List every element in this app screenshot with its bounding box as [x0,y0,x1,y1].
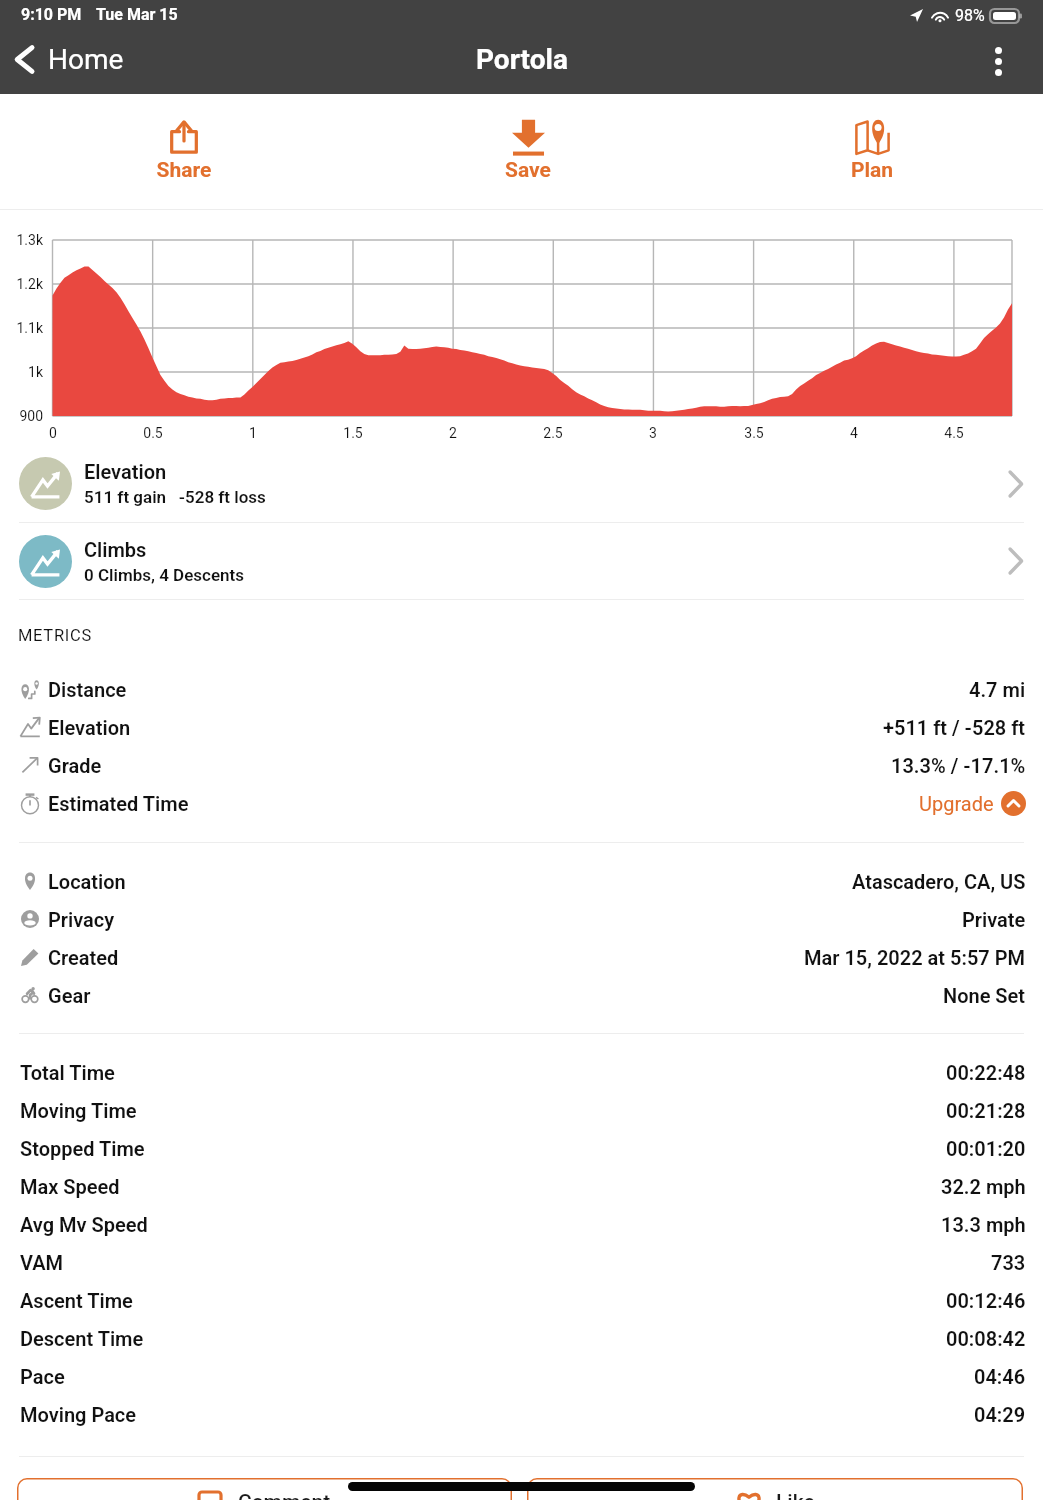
button[interactable]: Share [59,102,309,201]
staticText: Estimated Time [48,792,189,815]
button[interactable]: Like [527,1478,1023,1500]
staticText: 4.7 mi [969,678,1026,701]
staticText: 1.2k [0,276,43,292]
staticText: Tue Mar 15 [96,5,178,24]
staticText: 00:12:46 [946,1289,1026,1312]
staticText: Total Time [20,1061,115,1084]
staticText: Ascent Time [20,1289,133,1312]
staticText: 1.5 [323,425,383,441]
staticText: 3.5 [724,425,784,441]
staticText: Distance [48,678,127,701]
staticText: 0 Climbs, 4 Descents [84,565,245,585]
staticText: Descent Time [20,1327,144,1350]
staticText: Elevation [48,716,131,739]
staticText: Moving Pace [20,1403,137,1426]
staticText: 9:10 PM [21,5,82,24]
staticText: Gear [48,984,91,1007]
staticText: Plan [747,158,997,183]
staticText: Atascadero, CA, US [852,870,1026,893]
staticText: Portola [476,43,568,76]
staticText: 98% [955,6,985,25]
staticText: Grade [48,754,102,777]
staticText: Avg Mv Speed [20,1213,148,1236]
staticText: 00:08:42 [946,1327,1026,1350]
staticText: Like [776,1490,815,1500]
staticText: Privacy [48,908,115,931]
staticText: 0.5 [123,425,183,441]
staticText: Created [48,946,119,969]
button[interactable]: Climbs [0,523,1043,599]
staticText: 511 ft gain -528 ft loss [84,487,266,507]
staticText: 1.1k [0,320,43,336]
button[interactable]: More options [971,35,1043,88]
staticText: Home [48,43,124,76]
staticText: 900 [0,408,43,424]
staticText: 1 [223,425,283,441]
staticText: 13.3% / -17.1% [891,754,1026,777]
staticText: 04:46 [974,1365,1026,1388]
staticText: 13.3 mph [941,1213,1026,1236]
staticText: Save [403,158,653,183]
staticText: 1.3k [0,232,43,248]
staticText: Stopped Time [20,1137,145,1160]
button[interactable]: Elevation [0,445,1043,522]
staticText: Elevation [84,460,167,483]
staticText: 04:29 [974,1403,1026,1426]
staticText: 32.2 mph [941,1175,1026,1198]
staticText: 733 [991,1251,1026,1274]
staticText: Upgrade [919,792,994,815]
staticText: 00:01:20 [946,1137,1026,1160]
button[interactable]: Save [403,102,653,201]
staticText: 1k [0,364,43,380]
staticText: Mar 15, 2022 at 5:57 PM [804,946,1026,969]
staticText: Location [48,870,126,893]
button[interactable]: Home [0,35,138,84]
staticText: 3 [623,425,683,441]
staticText: 00:21:28 [946,1099,1026,1122]
staticText: 4 [824,425,884,441]
staticText: 4.5 [924,425,984,441]
staticText: Moving Time [20,1099,137,1122]
button[interactable]: Upgrade [919,791,1026,816]
staticText: Max Speed [20,1175,120,1198]
staticText: None Set [943,984,1026,1007]
button[interactable]: Comment [17,1478,512,1500]
staticText: 00:22:48 [946,1061,1026,1084]
staticText: METRICS [18,626,92,645]
staticText: 0 [23,425,83,441]
staticText: +511 ft / -528 ft [883,716,1026,739]
staticText: Private [962,908,1026,931]
staticText: Climbs [84,538,147,561]
staticText: 2 [423,425,483,441]
staticText: Share [59,158,309,183]
staticText: Pace [20,1365,65,1388]
button[interactable]: Plan [747,102,997,201]
staticText: Comment [238,1490,331,1500]
staticText: 2.5 [523,425,583,441]
staticText: VAM [20,1251,64,1274]
